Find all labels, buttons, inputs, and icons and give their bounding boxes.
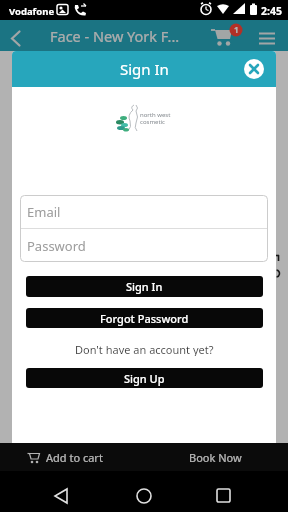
staticText: Password (27, 237, 86, 255)
button[interactable]: 1 (207, 21, 247, 51)
staticText: Email (27, 203, 61, 221)
staticText: Sign In (120, 59, 169, 79)
staticText: Vodafone (9, 5, 55, 18)
staticText: Book Now (189, 450, 242, 465)
button[interactable] (252, 22, 282, 49)
button[interactable]: Email (20, 195, 268, 228)
button[interactable] (2, 22, 28, 49)
button[interactable] (122, 476, 167, 512)
staticText: 1 (234, 24, 239, 35)
button[interactable]: Book Now (170, 443, 260, 471)
button[interactable] (200, 476, 245, 512)
button[interactable]: Add to cart (26, 443, 126, 471)
button[interactable]: Password (20, 229, 268, 262)
staticText: Add to cart (46, 450, 103, 465)
button[interactable]: Sign Up (26, 368, 263, 388)
staticText: Sign Up (124, 371, 165, 386)
staticText: Forgot Password (100, 311, 189, 326)
button[interactable] (244, 59, 264, 79)
staticText: north west (140, 111, 171, 119)
staticText: Sign In (126, 279, 163, 294)
staticText: Face - New York F... (50, 26, 180, 46)
staticText: Don't have an account yet? (75, 342, 214, 356)
staticText: 2:45 (261, 4, 282, 18)
staticText: cosmetic (140, 118, 165, 126)
button[interactable]: Forgot Password (26, 308, 263, 328)
button[interactable]: Sign In (26, 276, 263, 297)
button[interactable] (40, 476, 85, 512)
